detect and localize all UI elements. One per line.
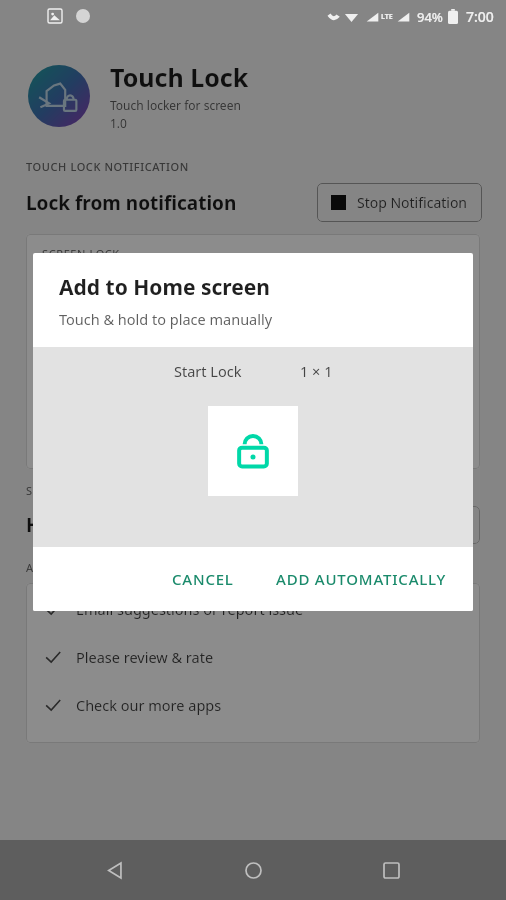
button[interactable]: Check our more apps (26, 695, 480, 715)
staticText: SHORTCUT (26, 483, 88, 498)
button[interactable]: Email suggestions or report issue (26, 599, 480, 619)
button[interactable]: SCREEN LOCK (26, 234, 480, 469)
button[interactable]: Touch Lock app icon (28, 65, 90, 127)
staticText: Lock from notification (26, 190, 237, 216)
staticText: Lock screen (42, 269, 154, 295)
staticText: 1.0 (110, 115, 127, 131)
staticText: Touch & hold to place manually (59, 309, 273, 329)
staticText: Email suggestions or report issue (76, 599, 304, 619)
button[interactable]: CANCEL (160, 559, 246, 599)
staticText: 1 × 1 (300, 361, 333, 381)
staticText: Stop Notification (357, 193, 468, 212)
button[interactable]: Please review & rate (26, 647, 480, 667)
button[interactable]: Stop Notification (317, 183, 482, 222)
staticText: SCREEN LOCK (42, 246, 120, 261)
button[interactable] (360, 506, 480, 544)
staticText: Please review & rate (76, 647, 214, 667)
button[interactable]: Home (230, 847, 276, 893)
staticText: TOUCH LOCK NOTIFICATION (26, 159, 189, 174)
button[interactable]: Recent apps (368, 847, 414, 893)
staticText: 94% (417, 8, 443, 26)
staticText: ABOUT (26, 560, 66, 575)
staticText: 7:00 (466, 7, 494, 26)
staticText: ADD AUTOMATICALLY (276, 569, 447, 589)
button[interactable]: Start Lock widget preview (208, 406, 298, 496)
staticText: LTE (381, 12, 393, 22)
button[interactable]: ADD AUTOMATICALLY (264, 559, 459, 599)
staticText: Start Lock (174, 361, 242, 381)
staticText: Home screen shortcut (26, 512, 236, 538)
staticText: Check our more apps (76, 695, 222, 715)
staticText: CANCEL (172, 569, 234, 589)
staticText: Touch locker for screen (110, 97, 241, 113)
staticText: Touch Lock (110, 60, 249, 94)
button[interactable]: Back (92, 847, 138, 893)
staticText: Add to Home screen (59, 273, 270, 302)
